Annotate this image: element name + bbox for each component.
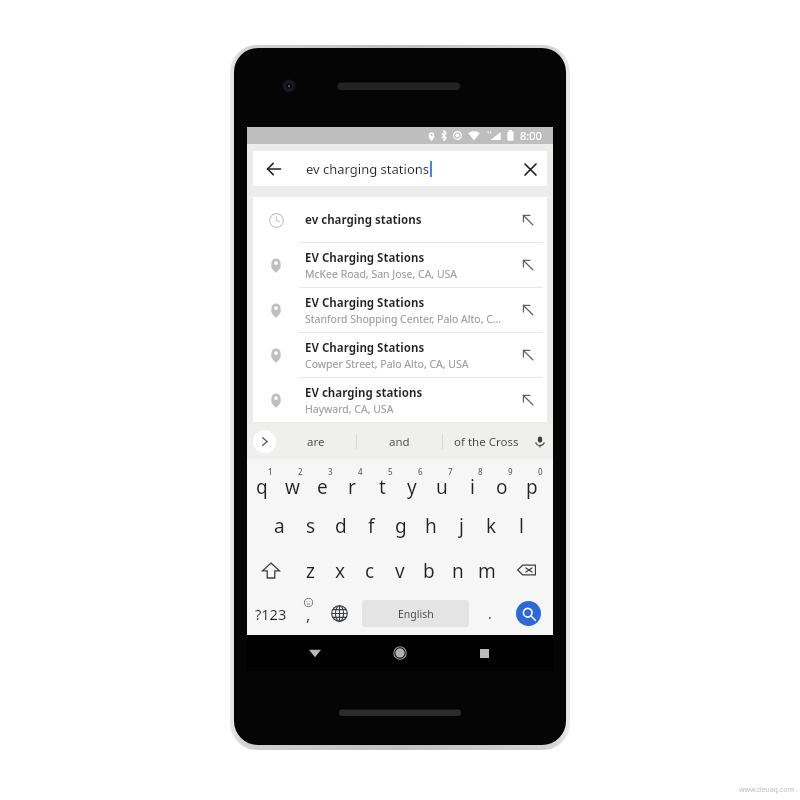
staticText: 7 bbox=[448, 466, 453, 477]
staticText: . bbox=[488, 604, 492, 623]
button[interactable]: Use suggestion bbox=[517, 344, 539, 366]
button[interactable]: m bbox=[472, 548, 501, 592]
staticText: o bbox=[496, 474, 508, 500]
button[interactable]: 4 bbox=[337, 459, 367, 504]
button[interactable]: z bbox=[295, 548, 325, 592]
button[interactable]: Change language bbox=[321, 592, 362, 635]
button[interactable]: l bbox=[506, 504, 536, 548]
button[interactable]: English bbox=[362, 600, 469, 627]
button[interactable]: Use suggestion bbox=[517, 299, 539, 321]
staticText: 8 bbox=[478, 466, 483, 477]
staticText: w bbox=[285, 474, 300, 500]
button[interactable]: 2 bbox=[277, 459, 307, 504]
staticText: b bbox=[423, 558, 435, 584]
staticText: Stanford Shopping Center, Palo Alto, C… bbox=[305, 312, 502, 326]
staticText: d bbox=[335, 513, 347, 539]
staticText: 1 bbox=[268, 466, 273, 477]
staticText: h bbox=[425, 513, 437, 539]
staticText: are bbox=[307, 434, 325, 450]
button[interactable]: f bbox=[356, 504, 386, 548]
staticText: EV charging stations bbox=[305, 385, 423, 401]
button[interactable]: are bbox=[276, 424, 356, 459]
button[interactable]: x bbox=[325, 548, 355, 592]
button[interactable]: n bbox=[443, 548, 472, 592]
button[interactable]: Recent apps bbox=[442, 635, 527, 671]
button[interactable]: k bbox=[476, 504, 506, 548]
button[interactable]: a bbox=[264, 504, 295, 548]
staticText: u bbox=[436, 474, 448, 500]
button[interactable]: 8 bbox=[457, 459, 487, 504]
staticText: n bbox=[452, 558, 464, 584]
staticText: a bbox=[274, 513, 285, 539]
staticText: m bbox=[478, 558, 496, 584]
staticText: j bbox=[459, 513, 464, 539]
staticText: l bbox=[519, 513, 524, 539]
staticText: and bbox=[389, 434, 410, 450]
staticText: i bbox=[470, 474, 475, 500]
staticText: t bbox=[379, 474, 386, 500]
staticText: ev charging stations bbox=[305, 212, 422, 228]
button[interactable]: 1 bbox=[247, 459, 277, 504]
button[interactable]: s bbox=[295, 504, 326, 548]
button[interactable]: EV Charging Stations bbox=[253, 288, 547, 332]
staticText: English bbox=[398, 607, 434, 621]
button[interactable]: Emoji and comma bbox=[295, 592, 321, 635]
staticText: s bbox=[306, 513, 316, 539]
button[interactable]: ev charging stations bbox=[253, 197, 547, 242]
button[interactable]: EV charging stations bbox=[253, 378, 547, 422]
button[interactable]: Home bbox=[357, 635, 442, 671]
button[interactable]: v bbox=[385, 548, 414, 592]
button[interactable]: . bbox=[469, 592, 511, 635]
button[interactable]: Use suggestion bbox=[517, 254, 539, 276]
button[interactable]: 7 bbox=[427, 459, 457, 504]
staticText: e bbox=[317, 474, 328, 500]
staticText: ev charging stations bbox=[306, 160, 430, 178]
button[interactable]: 3 bbox=[307, 459, 337, 504]
button[interactable]: Expand suggestions bbox=[253, 430, 276, 453]
staticText: 3 bbox=[328, 466, 333, 477]
button[interactable]: Back bbox=[253, 151, 547, 186]
staticText: 8:00 bbox=[520, 128, 542, 143]
button[interactable]: j bbox=[446, 504, 476, 548]
button[interactable]: c bbox=[355, 548, 385, 592]
staticText: 0 bbox=[538, 466, 543, 477]
staticText: c bbox=[365, 558, 375, 584]
staticText: 5 bbox=[388, 466, 393, 477]
button[interactable]: ?123 bbox=[247, 592, 295, 635]
button[interactable]: b bbox=[414, 548, 443, 592]
staticText: EV Charging Stations bbox=[305, 295, 425, 311]
button[interactable]: Back bbox=[272, 635, 357, 671]
button[interactable]: 5 bbox=[367, 459, 397, 504]
button[interactable]: Backspace bbox=[501, 548, 553, 592]
staticText: www.deuaq.com bbox=[739, 785, 794, 795]
staticText: ?123 bbox=[255, 604, 287, 624]
button[interactable]: Back bbox=[261, 156, 287, 182]
button[interactable]: 6 bbox=[397, 459, 427, 504]
staticText: g bbox=[395, 513, 407, 539]
staticText: , bbox=[306, 604, 311, 626]
staticText: of the Cross bbox=[454, 434, 519, 450]
button[interactable]: EV Charging Stations bbox=[253, 333, 547, 377]
button[interactable]: and bbox=[357, 424, 442, 459]
button[interactable]: of the Cross bbox=[443, 424, 529, 459]
staticText: v bbox=[395, 558, 405, 584]
staticText: 2 bbox=[298, 466, 303, 477]
button[interactable]: Use suggestion bbox=[517, 389, 539, 411]
staticText: 9 bbox=[508, 466, 513, 477]
button[interactable]: g bbox=[386, 504, 416, 548]
button[interactable]: h bbox=[416, 504, 446, 548]
button[interactable]: Shift bbox=[247, 548, 295, 592]
button[interactable]: Use suggestion bbox=[517, 209, 539, 231]
button[interactable]: d bbox=[326, 504, 356, 548]
staticText: f bbox=[368, 513, 375, 539]
button[interactable]: EV Charging Stations bbox=[253, 243, 547, 287]
staticText: p bbox=[526, 474, 538, 500]
button[interactable]: 9 bbox=[487, 459, 517, 504]
button[interactable]: Search bbox=[516, 601, 541, 626]
staticText: 4 bbox=[358, 466, 363, 477]
staticText: McKee Road, San Jose, CA, USA bbox=[305, 267, 458, 281]
button[interactable]: 0 bbox=[517, 459, 547, 504]
button[interactable]: Voice input bbox=[529, 431, 551, 453]
staticText: Cowper Street, Palo Alto, CA, USA bbox=[305, 357, 469, 371]
button[interactable]: Clear search bbox=[517, 156, 543, 182]
